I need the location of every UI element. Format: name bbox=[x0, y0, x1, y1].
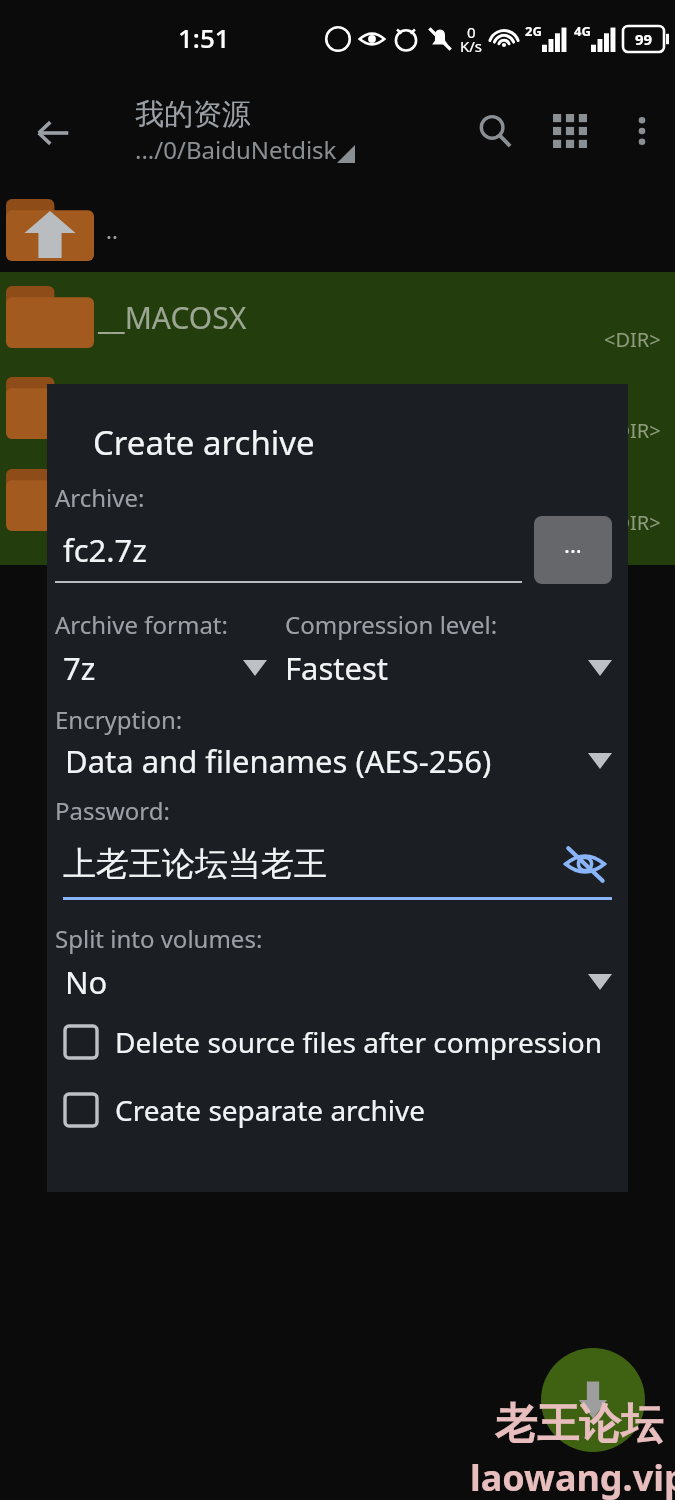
button[interactable]: Create separate archive bbox=[65, 1091, 628, 1129]
staticText: 4G bbox=[574, 22, 591, 40]
staticText: Archive: bbox=[55, 481, 145, 514]
button[interactable]: Search bbox=[459, 95, 531, 167]
button[interactable]: Download bbox=[541, 1348, 645, 1452]
staticText: 老王论坛 bbox=[495, 1398, 663, 1451]
button[interactable]: No bbox=[55, 961, 612, 1003]
staticText: Create archive bbox=[93, 420, 315, 465]
staticText: .../0/BaiduNetdisk bbox=[135, 133, 337, 166]
staticText: ... bbox=[564, 529, 582, 559]
button[interactable]: More options bbox=[609, 98, 675, 164]
staticText: Delete source files after compression bbox=[115, 1023, 603, 1061]
button[interactable]: Show password bbox=[558, 837, 612, 891]
button[interactable]: <DIR> bbox=[0, 454, 675, 546]
button[interactable]: Grid view bbox=[531, 92, 609, 170]
staticText: Data and filenames (AES-256) bbox=[65, 740, 492, 782]
staticText: Split into volumes: bbox=[55, 922, 263, 955]
staticText: Archive format: bbox=[55, 608, 285, 641]
staticText: No bbox=[65, 961, 108, 1003]
staticText: laowang.vip bbox=[470, 1453, 675, 1500]
button[interactable]: Data and filenames (AES-256) bbox=[55, 740, 612, 782]
button[interactable]: .. bbox=[0, 188, 675, 272]
staticText: 7z bbox=[63, 647, 96, 689]
staticText: 1:51 bbox=[178, 20, 230, 55]
staticText: Password: bbox=[55, 794, 170, 827]
staticText: 上老王论坛当老王 bbox=[63, 843, 327, 885]
button[interactable]: Delete source files after compression bbox=[65, 1023, 628, 1061]
button[interactable]: <DIR> bbox=[0, 362, 675, 454]
staticText: 2G bbox=[525, 22, 542, 40]
staticText: .. bbox=[106, 215, 118, 245]
staticText: 我的资源 bbox=[135, 96, 251, 133]
staticText: 0 bbox=[467, 22, 476, 42]
staticText: fc2.7z bbox=[63, 529, 147, 571]
staticText: 99 bbox=[635, 29, 653, 49]
staticText: Encryption: bbox=[55, 703, 183, 736]
button[interactable]: 7z bbox=[55, 647, 285, 689]
staticText: <DIR> bbox=[604, 326, 661, 353]
staticText: Create separate archive bbox=[115, 1091, 426, 1129]
staticText: Compression level: bbox=[285, 608, 498, 641]
staticText: K/s bbox=[460, 36, 483, 56]
staticText: <DIR> bbox=[604, 509, 661, 536]
staticText: __MACOSX bbox=[98, 297, 247, 338]
button[interactable]: Browse bbox=[534, 516, 612, 584]
staticText: <DIR> bbox=[604, 417, 661, 444]
button[interactable]: Fastest bbox=[285, 647, 612, 689]
staticText: Fastest bbox=[285, 647, 389, 689]
button[interactable]: Back bbox=[20, 100, 86, 166]
button[interactable]: __MACOSX bbox=[0, 272, 675, 362]
